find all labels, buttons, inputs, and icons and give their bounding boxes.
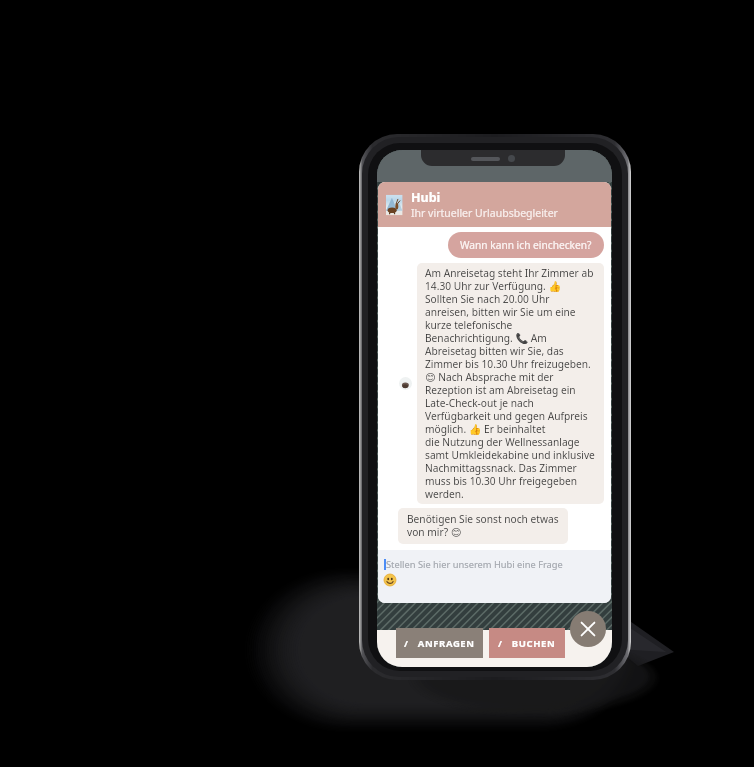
staticText: Stellen Sie hier unserem Hubi eine Frage: [386, 558, 563, 571]
staticText: / ANFRAGEN: [404, 637, 475, 650]
staticText: Ihr virtueller Urlaubsbegleiter: [411, 206, 558, 220]
button[interactable]: Am Anreisetag steht Ihr Zimmer ab 14.30 …: [417, 263, 604, 504]
staticText: Am Anreisetag steht Ihr Zimmer ab 14.30 …: [425, 266, 595, 501]
staticText: Hubi: [411, 189, 441, 206]
button[interactable]: Wann kann ich einchecken?: [448, 232, 604, 258]
staticText: Wann kann ich einchecken?: [460, 238, 592, 252]
staticText: Benötigen Sie sonst noch etwas von mir? …: [407, 512, 559, 539]
button[interactable]: / ANFRAGEN: [396, 628, 483, 658]
button[interactable]: Stellen Sie hier unserem Hubi eine Frage: [378, 550, 611, 603]
button[interactable]: Benötigen Sie sonst noch etwas von mir? …: [398, 508, 568, 544]
staticText: / BUCHEN: [498, 637, 556, 650]
button[interactable]: Schließen: [570, 611, 606, 647]
button[interactable]: / BUCHEN: [489, 628, 565, 658]
button[interactable]: Hubi: [378, 182, 611, 227]
